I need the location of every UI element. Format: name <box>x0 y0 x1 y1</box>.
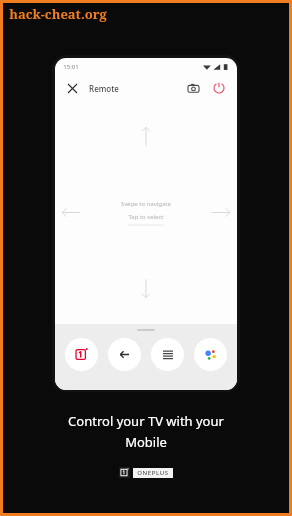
button[interactable]: Screenshot <box>183 78 203 98</box>
staticText: 15:01 <box>63 63 79 71</box>
button[interactable]: Power <box>209 78 229 98</box>
button[interactable]: Back <box>108 338 141 371</box>
staticText: Swipe to navigate <box>121 200 171 208</box>
staticText: hack-cheat.org <box>9 5 107 23</box>
staticText: ONEPLUS <box>137 469 169 477</box>
staticText: Control your TV with your <box>68 412 224 430</box>
button[interactable]: Menu <box>151 338 184 371</box>
button[interactable]: Touchpad, swipe to navigate, tap to sele… <box>55 101 237 324</box>
staticText: Tap to select <box>128 213 164 221</box>
button[interactable]: Google Assistant <box>194 338 227 371</box>
staticText: Remote <box>89 83 119 94</box>
button[interactable]: OnePlus home <box>65 338 98 371</box>
button[interactable]: Close <box>63 79 81 97</box>
staticText: Mobile <box>125 433 167 451</box>
